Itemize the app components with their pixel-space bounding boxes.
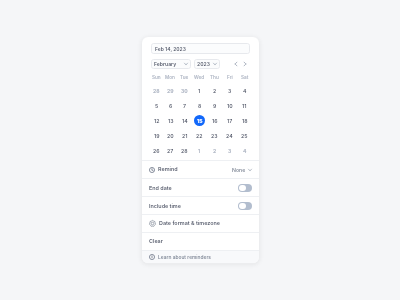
button[interactable]: Clear — [142, 233, 259, 250]
button[interactable]: 28 — [151, 85, 162, 96]
button[interactable]: End date — [238, 184, 252, 192]
staticText: End date — [149, 185, 172, 192]
button[interactable]: 27 — [165, 145, 176, 156]
button[interactable]: 30 — [179, 85, 190, 96]
button[interactable]: 15 — [194, 115, 205, 126]
staticText: Feb 14, 2023 — [155, 46, 186, 52]
button[interactable]: 10 — [224, 100, 235, 111]
button[interactable]: 3 — [224, 85, 235, 96]
staticText: 2023 — [197, 61, 210, 67]
button[interactable]: 14 — [179, 115, 190, 126]
button[interactable]: 4 — [239, 145, 250, 156]
staticText: 3 — [228, 148, 232, 154]
button[interactable]: 2 — [209, 85, 220, 96]
staticText: Fri — [227, 74, 233, 80]
staticText: Remind — [158, 166, 178, 173]
staticText: 1 — [198, 148, 201, 154]
button[interactable]: 1 — [194, 145, 205, 156]
staticText: Sun — [152, 74, 161, 80]
button[interactable]: 12 — [151, 115, 162, 126]
button[interactable]: Next month — [241, 60, 249, 68]
button[interactable]: 16 — [209, 115, 220, 126]
button[interactable]: 5 — [151, 100, 162, 111]
staticText: 9 — [213, 103, 217, 109]
button[interactable]: 26 — [151, 145, 162, 156]
button[interactable]: Include time — [238, 202, 252, 210]
staticText: 28 — [181, 148, 188, 154]
staticText: 23 — [211, 133, 218, 139]
button[interactable]: Include time — [142, 197, 259, 214]
button[interactable]: 18 — [239, 115, 250, 126]
button[interactable]: 22 — [194, 130, 205, 141]
staticText: Tue — [180, 74, 189, 80]
staticText: 1 — [198, 88, 201, 94]
staticText: 15 — [197, 118, 203, 124]
staticText: 29 — [167, 88, 174, 94]
button[interactable]: 19 — [151, 130, 162, 141]
staticText: 26 — [153, 148, 160, 154]
staticText: 5 — [155, 103, 159, 109]
staticText: Sat — [241, 74, 249, 80]
button[interactable]: 2 — [209, 145, 220, 156]
button[interactable]: 28 — [179, 145, 190, 156]
button[interactable]: Learn about reminders — [142, 251, 259, 263]
staticText: 25 — [241, 133, 248, 139]
staticText: 2 — [213, 88, 217, 94]
staticText: 18 — [242, 118, 248, 124]
button[interactable]: 8 — [194, 100, 205, 111]
button[interactable]: 13 — [165, 115, 176, 126]
staticText: 30 — [181, 88, 188, 94]
staticText: 24 — [226, 133, 233, 139]
staticText: Thu — [210, 74, 219, 80]
button[interactable]: Previous month — [232, 60, 240, 68]
button[interactable]: 24 — [224, 130, 235, 141]
staticText: 10 — [227, 103, 233, 109]
button[interactable]: 2023 — [194, 59, 220, 69]
button[interactable]: Remind — [142, 161, 259, 178]
staticText: 4 — [243, 148, 247, 154]
staticText: 13 — [168, 118, 174, 124]
staticText: Wed — [194, 74, 205, 80]
staticText: 16 — [212, 118, 218, 124]
button[interactable]: 25 — [239, 130, 250, 141]
button[interactable]: 17 — [224, 115, 235, 126]
staticText: 4 — [243, 88, 247, 94]
button[interactable]: 11 — [239, 100, 250, 111]
staticText: 21 — [182, 133, 188, 139]
button[interactable]: Feb 14, 2023 — [151, 43, 250, 54]
button[interactable]: 29 — [165, 85, 176, 96]
button[interactable]: End date — [142, 179, 259, 196]
staticText: 2 — [213, 148, 217, 154]
button[interactable]: 7 — [179, 100, 190, 111]
button[interactable]: 4 — [239, 85, 250, 96]
button[interactable]: 6 — [165, 100, 176, 111]
staticText: 14 — [182, 118, 188, 124]
staticText: Include time — [149, 203, 181, 210]
staticText: 7 — [183, 103, 186, 109]
staticText: Clear — [149, 238, 163, 245]
staticText: 11 — [242, 103, 247, 109]
button[interactable]: 9 — [209, 100, 220, 111]
button[interactable]: 1 — [194, 85, 205, 96]
staticText: Date format & timezone — [159, 220, 220, 227]
staticText: None — [232, 167, 246, 173]
staticText: 8 — [198, 103, 202, 109]
staticText: 17 — [227, 118, 233, 124]
button[interactable]: February — [151, 59, 191, 69]
button[interactable]: 20 — [165, 130, 176, 141]
button[interactable]: 23 — [209, 130, 220, 141]
staticText: 3 — [228, 88, 232, 94]
staticText: 6 — [169, 103, 173, 109]
button[interactable]: Date format & timezone — [142, 215, 259, 232]
staticText: 20 — [167, 133, 174, 139]
staticText: February — [154, 61, 177, 67]
staticText: 22 — [196, 133, 203, 139]
staticText: 27 — [167, 148, 174, 154]
staticText: Mon — [165, 74, 175, 80]
staticText: Learn about reminders — [158, 254, 211, 260]
button[interactable]: 21 — [179, 130, 190, 141]
staticText: 28 — [153, 88, 160, 94]
button[interactable]: 3 — [224, 145, 235, 156]
staticText: 12 — [154, 118, 160, 124]
staticText: 19 — [154, 133, 160, 139]
